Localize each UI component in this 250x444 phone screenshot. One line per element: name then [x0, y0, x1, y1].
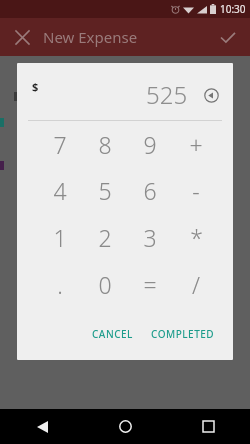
- button[interactable]: Home: [84, 409, 167, 444]
- button[interactable]: Backspace: [199, 83, 223, 107]
- staticText: +: [189, 129, 203, 160]
- button[interactable]: -: [173, 167, 219, 214]
- button[interactable]: 4: [37, 167, 82, 214]
- button[interactable]: 1: [37, 214, 82, 261]
- button[interactable]: 7: [37, 121, 82, 167]
- button[interactable]: Save: [214, 23, 242, 51]
- staticText: 525: [146, 78, 188, 111]
- staticText: CANCEL: [92, 327, 133, 341]
- staticText: 2: [98, 222, 112, 253]
- button[interactable]: COMPLETED: [146, 322, 220, 346]
- staticText: 3: [143, 222, 157, 253]
- button[interactable]: 6: [127, 167, 173, 214]
- button[interactable]: 9: [127, 121, 173, 167]
- staticText: 1: [53, 222, 67, 253]
- button[interactable]: 8: [82, 121, 127, 167]
- button[interactable]: 2: [82, 214, 127, 261]
- staticText: 8: [98, 129, 112, 160]
- button[interactable]: Recent apps: [167, 409, 250, 444]
- staticText: /: [192, 269, 200, 300]
- staticText: 10:30: [220, 2, 246, 16]
- button[interactable]: CANCEL: [87, 322, 138, 346]
- button[interactable]: +: [173, 121, 219, 167]
- staticText: =: [143, 269, 157, 300]
- button[interactable]: 0: [82, 261, 127, 308]
- staticText: $: [32, 79, 39, 94]
- staticText: .: [57, 269, 63, 300]
- button[interactable]: Close: [8, 23, 36, 51]
- button[interactable]: /: [173, 261, 219, 308]
- staticText: -: [192, 175, 200, 206]
- staticText: COMPLETED: [151, 327, 215, 341]
- button[interactable]: Back: [0, 409, 84, 444]
- button[interactable]: *: [173, 214, 219, 261]
- staticText: New Expense: [43, 27, 138, 47]
- staticText: 4: [53, 175, 67, 206]
- staticText: 9: [143, 129, 157, 160]
- button[interactable]: 3: [127, 214, 173, 261]
- button[interactable]: .: [37, 261, 82, 308]
- staticText: 7: [53, 129, 67, 160]
- staticText: 5: [98, 175, 112, 206]
- staticText: 0: [98, 269, 112, 300]
- staticText: *: [190, 222, 203, 253]
- button[interactable]: 5: [82, 167, 127, 214]
- staticText: 6: [143, 175, 157, 206]
- button[interactable]: =: [127, 261, 173, 308]
